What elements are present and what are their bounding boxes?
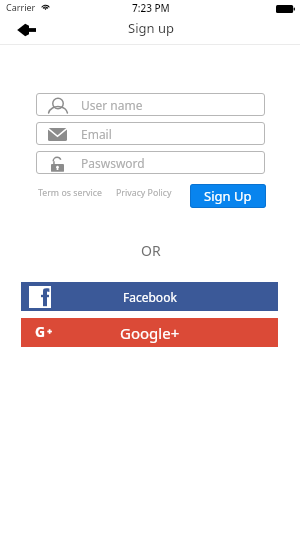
button[interactable]: User name [36,93,265,116]
button[interactable]: Back [14,20,38,39]
staticText: Google+ [120,323,180,343]
button[interactable]: Email [36,122,265,145]
button[interactable]: Term os service [38,187,102,199]
button[interactable]: Paswsword [36,151,265,174]
button[interactable]: Privacy Policy [116,187,172,199]
staticText: Carrier [6,1,36,13]
other: Google plus [35,322,52,341]
staticText: User name [81,97,143,113]
staticText: Email [81,126,112,142]
staticText: Sign Up [204,187,252,205]
staticText: 7:23 PM [132,1,170,15]
staticText: Sign up [128,19,174,37]
staticText: G [35,322,46,341]
staticText: OR [141,241,161,260]
staticText: Facebook [123,289,177,305]
button[interactable]: Facebook [21,282,278,311]
button[interactable]: Sign Up [190,184,266,208]
staticText: Paswsword [81,155,145,171]
button[interactable]: Google plus [21,318,278,347]
